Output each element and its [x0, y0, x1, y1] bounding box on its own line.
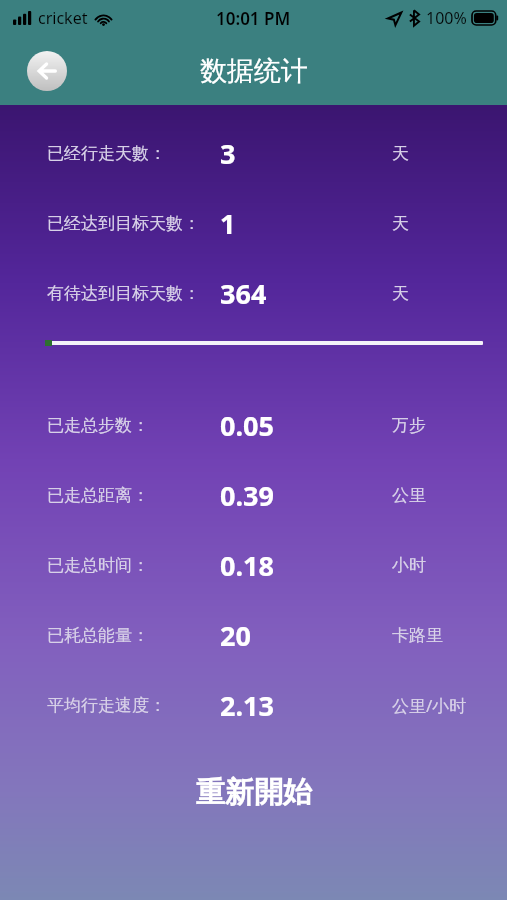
staticText: 平均行走速度： [47, 695, 166, 716]
staticText: 0.05 [220, 407, 274, 444]
staticText: 卡路里 [392, 625, 443, 646]
staticText: cricket [38, 7, 88, 29]
staticText: 公里 [392, 485, 426, 506]
staticText: 重新開始 [196, 774, 312, 811]
staticText: 万步 [392, 415, 426, 436]
staticText: 2.13 [220, 687, 274, 724]
staticText: 1 [220, 205, 236, 242]
staticText: 已走总距离： [47, 485, 149, 506]
staticText: 已走总时间： [47, 555, 149, 576]
staticText: 0.18 [220, 547, 274, 584]
button[interactable]: 平均行走速度： [0, 670, 507, 740]
staticText: 已经达到目标天數： [47, 213, 200, 234]
staticText: 公里/小时 [392, 694, 467, 717]
button[interactable]: 有待达到目标天數： [0, 258, 507, 328]
staticText: 天 [392, 143, 409, 164]
staticText: 有待达到目标天數： [47, 283, 200, 304]
staticText: 已经行走天數： [47, 143, 166, 164]
staticText: 已走总步数： [47, 415, 149, 436]
button[interactable]: 已经达到目标天數： [0, 188, 507, 258]
button[interactable]: 已走总步数： [0, 390, 507, 460]
button[interactable]: 已走总时间： [0, 530, 507, 600]
staticText: 364 [220, 275, 267, 312]
staticText: 3 [220, 135, 236, 172]
staticText: 天 [392, 283, 409, 304]
staticText: 已耗总能量： [47, 625, 149, 646]
button[interactable]: 已经行走天數： [0, 118, 507, 188]
staticText: 小时 [392, 555, 426, 576]
staticText: 10:01 PM [216, 7, 291, 30]
staticText: 0.39 [220, 477, 274, 514]
button[interactable]: 已走总距离： [0, 460, 507, 530]
staticText: 天 [392, 213, 409, 234]
staticText: 数据统计 [200, 54, 308, 88]
staticText: 100% [426, 7, 467, 29]
staticText: 20 [220, 617, 251, 654]
button[interactable]: Back [27, 51, 67, 91]
button[interactable]: 已耗总能量： [0, 600, 507, 670]
button[interactable]: 重新開始 [0, 762, 507, 822]
